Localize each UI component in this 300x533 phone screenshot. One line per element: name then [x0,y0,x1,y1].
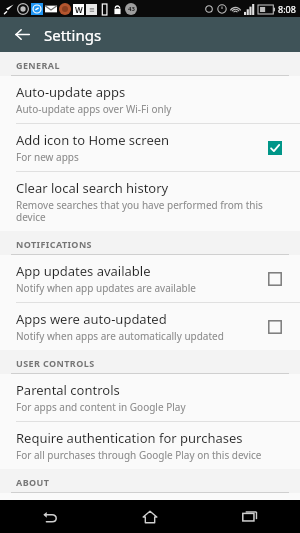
button[interactable]: Back [0,500,100,533]
staticText: Notify when app updates are available [16,281,196,295]
staticText: For new apps [16,150,79,164]
button[interactable]: Apps were auto-updated [0,303,300,350]
staticText: Remove searches that you have performed … [16,198,290,224]
button[interactable]: App updates available [260,264,290,294]
staticText: GENERAL [16,59,60,71]
button[interactable]: Parental controls [0,374,300,421]
staticText: Clear local search history [16,179,169,197]
staticText: USER CONTROLS [16,357,95,369]
staticText: NOTIFICATIONS [16,238,92,250]
staticText: Add icon to Home screen [16,131,170,149]
button[interactable]: Home [100,500,200,533]
staticText: Settings [44,25,102,45]
staticText: Require authentication for purchases [16,429,243,447]
button[interactable]: Require authentication for purchases [0,422,300,469]
button[interactable]: App updates available [0,255,300,302]
staticText: Parental controls [16,381,120,399]
button[interactable]: Back [0,17,44,52]
staticText: Auto-update apps [16,83,126,101]
button[interactable]: Apps were auto-updated [260,312,290,342]
staticText: For all purchases through Google Play on… [16,448,262,462]
staticText: Apps were auto-updated [16,310,167,328]
staticText: 8:08 [278,3,296,15]
staticText: 43 [128,5,135,13]
button[interactable]: Add icon to Home screen [260,133,290,163]
button[interactable]: Clear local search history [0,172,300,231]
staticText: Notify when apps are automatically updat… [16,329,224,343]
staticText: App updates available [16,262,151,280]
staticText: Auto-update apps over Wi-Fi only [16,102,172,116]
staticText: W [75,4,83,15]
staticText: ≡ [89,6,95,14]
button[interactable]: Auto-update apps [0,76,300,123]
staticText: For apps and content in Google Play [16,400,186,414]
staticText: ABOUT [16,476,50,488]
button[interactable]: Add icon to Home screen [0,124,300,171]
button[interactable]: Recents [200,500,300,533]
